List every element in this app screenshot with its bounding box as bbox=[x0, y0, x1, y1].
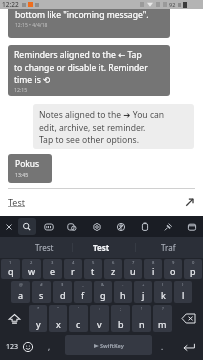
button[interactable]: 7 bbox=[124, 259, 142, 279]
staticText: Test bbox=[93, 242, 110, 253]
button[interactable]: $ bbox=[53, 281, 72, 303]
button[interactable]: Test bbox=[73, 237, 129, 258]
button[interactable]: ' bbox=[69, 305, 88, 332]
staticText: k bbox=[161, 289, 166, 301]
button[interactable]: 3 bbox=[43, 259, 62, 279]
button[interactable]: 1 bbox=[1, 259, 20, 279]
staticText: u bbox=[130, 265, 136, 277]
button[interactable]: Search bbox=[18, 218, 36, 235]
button[interactable]: : bbox=[90, 305, 109, 332]
staticText: aligned to bottom like "incoming" bbox=[15, 0, 151, 9]
button[interactable]: Themes bbox=[112, 216, 130, 237]
button[interactable]: GIF bbox=[40, 216, 58, 237]
button[interactable]: Close bbox=[0, 216, 18, 237]
button[interactable]: ; bbox=[111, 305, 130, 332]
staticText: 123 bbox=[6, 342, 19, 352]
button[interactable]: Stickers bbox=[63, 216, 81, 237]
staticText: ; bbox=[120, 306, 122, 312]
button[interactable]: 6 bbox=[104, 259, 122, 279]
button[interactable]: - bbox=[114, 281, 132, 303]
staticText: 3 bbox=[51, 260, 54, 266]
button[interactable]: ? bbox=[153, 305, 172, 332]
button[interactable]: ! bbox=[132, 305, 151, 332]
staticText: p bbox=[190, 265, 196, 277]
button[interactable]: , bbox=[42, 333, 56, 360]
staticText: ? bbox=[162, 306, 164, 312]
staticText: 5 bbox=[92, 260, 95, 266]
staticText: ( bbox=[162, 282, 164, 288]
staticText: Test bbox=[8, 196, 26, 208]
staticText: y bbox=[36, 318, 41, 330]
staticText: 2 bbox=[30, 260, 33, 266]
button[interactable]: * bbox=[29, 305, 47, 332]
staticText: i bbox=[152, 265, 155, 277]
button[interactable]: Calendar bbox=[183, 216, 201, 237]
button[interactable]: aligned to bottom like "incoming" bbox=[8, 0, 170, 38]
staticText: c bbox=[76, 318, 81, 330]
staticText: q bbox=[8, 265, 14, 277]
staticText: o bbox=[170, 265, 176, 277]
staticText: Traf bbox=[161, 242, 176, 253]
staticText: z bbox=[111, 265, 116, 277]
button[interactable]: Backspace bbox=[173, 304, 203, 333]
button[interactable]: ) bbox=[174, 281, 192, 303]
button[interactable]: @ bbox=[11, 281, 30, 303]
button[interactable]: 5 bbox=[84, 259, 102, 279]
staticText: h bbox=[120, 289, 126, 301]
staticText: 0 bbox=[192, 260, 195, 266]
button[interactable]: ( bbox=[154, 281, 172, 303]
staticText: 13:45 bbox=[15, 171, 29, 178]
button[interactable]: Emoji bbox=[21, 333, 34, 360]
button[interactable]: Space bbox=[65, 335, 152, 355]
staticText: Trest bbox=[35, 242, 54, 253]
staticText: _ bbox=[82, 282, 84, 288]
staticText: n bbox=[139, 318, 145, 330]
button[interactable]: . bbox=[155, 333, 169, 360]
button[interactable]: & bbox=[94, 281, 112, 303]
staticText: 1 bbox=[9, 260, 12, 266]
staticText: v bbox=[97, 318, 102, 330]
button[interactable]: Pokus bbox=[8, 154, 52, 183]
staticText: : bbox=[99, 306, 101, 312]
button[interactable]: Notes aligned to the ➔ You can edit, arc… bbox=[33, 104, 194, 149]
button[interactable]: Shift bbox=[0, 304, 28, 333]
button[interactable]: # bbox=[32, 281, 51, 303]
staticText: 12:22 bbox=[2, 0, 19, 9]
button[interactable]: Enter bbox=[175, 333, 203, 360]
button[interactable]: Expand bbox=[183, 196, 196, 209]
staticText: @ bbox=[19, 282, 23, 288]
button[interactable]: _ bbox=[74, 281, 92, 303]
staticText: # bbox=[40, 282, 43, 288]
staticText: g bbox=[100, 289, 106, 301]
staticText: 12:15 bbox=[14, 86, 28, 93]
staticText: . bbox=[161, 341, 164, 352]
staticText: 92 bbox=[169, 1, 176, 8]
staticText: ) bbox=[182, 282, 184, 288]
button[interactable]: Reminders aligned to the ← Tap to change… bbox=[8, 45, 170, 96]
staticText: b bbox=[118, 318, 124, 330]
button[interactable]: 2 bbox=[22, 259, 41, 279]
staticText: bottom like "incoming message". bbox=[15, 9, 149, 21]
button[interactable]: 0 bbox=[184, 259, 202, 279]
staticText: 6 bbox=[112, 260, 115, 266]
staticText: d bbox=[60, 289, 66, 301]
button[interactable]: Settings bbox=[88, 216, 106, 237]
button[interactable]: 123 bbox=[0, 333, 24, 360]
staticText: m bbox=[158, 318, 167, 330]
button[interactable]: 8 bbox=[144, 259, 162, 279]
staticText: Reminders aligned to the ← Tap to change… bbox=[14, 49, 148, 85]
button[interactable]: 4 bbox=[64, 259, 82, 279]
button[interactable]: Pin bbox=[159, 216, 177, 237]
staticText: 4 bbox=[72, 260, 75, 266]
staticText: Notes aligned to the ➔ You can edit, arc… bbox=[39, 109, 165, 145]
button[interactable]: Clipboard bbox=[136, 216, 154, 237]
staticText: + bbox=[142, 282, 145, 288]
button[interactable]: " bbox=[49, 305, 67, 332]
button[interactable]: Traf bbox=[140, 237, 196, 258]
button[interactable]: Trest bbox=[16, 237, 72, 258]
button[interactable]: + bbox=[134, 281, 152, 303]
staticText: 7 bbox=[132, 260, 135, 266]
button[interactable]: 9 bbox=[164, 259, 182, 279]
staticText: & bbox=[101, 282, 105, 288]
staticText: SwiftKey bbox=[100, 342, 124, 349]
